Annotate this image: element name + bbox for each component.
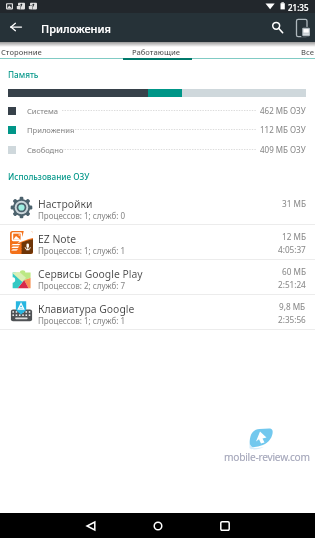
- staticText: Приложения: [27, 125, 75, 135]
- button[interactable]: Приложения: [0, 122, 315, 139]
- staticText: 12 МБ: [282, 231, 306, 242]
- button[interactable]: Настройки: [0, 190, 315, 225]
- staticText: Свободно: [27, 145, 64, 155]
- staticText: Сторонние: [1, 47, 42, 57]
- button[interactable]: Screen recorder: [290, 15, 315, 40]
- staticText: 462 МБ ОЗУ: [260, 105, 306, 116]
- staticText: 112 МБ ОЗУ: [260, 124, 306, 135]
- button[interactable]: Search: [263, 13, 291, 41]
- button[interactable]: Recent apps: [210, 513, 239, 538]
- staticText: Настройки: [38, 197, 93, 211]
- button[interactable]: Back: [76, 513, 105, 538]
- staticText: Память: [8, 69, 39, 80]
- staticText: Клавиатура Google: [38, 302, 135, 316]
- button[interactable]: EZ Note: [0, 225, 315, 260]
- staticText: EZ Note: [38, 232, 77, 246]
- staticText: Процессов: 2; служб: 7: [38, 280, 126, 291]
- button[interactable]: Back: [2, 13, 30, 41]
- button[interactable]: Работающие: [110, 42, 205, 61]
- staticText: Процессов: 1; служб: 1: [38, 315, 126, 326]
- button[interactable]: Все: [268, 42, 315, 61]
- staticText: 2:51:24: [278, 279, 306, 290]
- button[interactable]: Свободно: [0, 142, 315, 159]
- staticText: Использование ОЗУ: [8, 171, 90, 182]
- staticText: 4:05:37: [278, 244, 306, 255]
- staticText: 409 МБ ОЗУ: [260, 144, 306, 155]
- staticText: Работающие: [132, 47, 180, 57]
- staticText: 31 МБ: [282, 198, 306, 209]
- button[interactable]: Сторонние: [0, 42, 86, 61]
- staticText: mobile-review.com: [224, 450, 310, 464]
- button[interactable]: Сервисы Google Play: [0, 260, 315, 295]
- staticText: 2:35:56: [278, 314, 306, 325]
- staticText: Все: [301, 47, 314, 57]
- staticText: Процессов: 1; служб: 0: [38, 210, 126, 221]
- staticText: 9,8 МБ: [279, 301, 306, 312]
- staticText: Приложения: [41, 21, 111, 36]
- staticText: 60 МБ: [282, 266, 306, 277]
- staticText: Процессов: 1; служб: 1: [38, 245, 126, 256]
- staticText: 21:35: [288, 2, 309, 13]
- staticText: Система: [27, 106, 59, 116]
- button[interactable]: Система: [0, 103, 315, 120]
- button[interactable]: Home: [143, 513, 172, 538]
- button[interactable]: Клавиатура Google: [0, 295, 315, 330]
- staticText: Сервисы Google Play: [38, 267, 143, 281]
